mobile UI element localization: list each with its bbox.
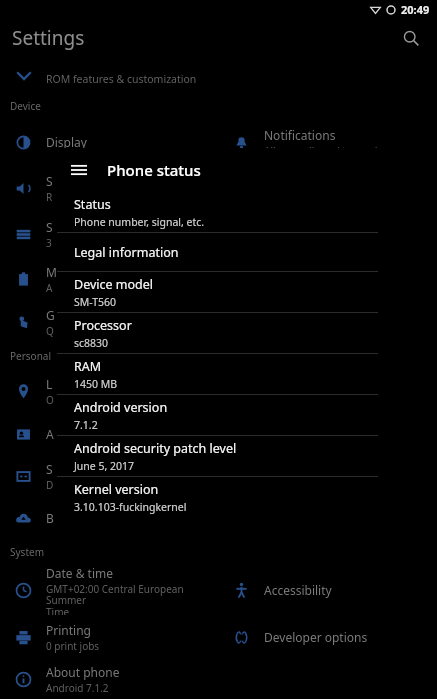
button[interactable]: Processor	[57, 313, 437, 353]
staticText: S	[46, 461, 53, 477]
staticText: 3	[46, 236, 52, 250]
staticText: S	[46, 173, 53, 189]
button[interactable]	[218, 455, 437, 497]
staticText: D	[46, 478, 54, 492]
staticText: B	[46, 510, 54, 526]
staticText: M	[46, 264, 57, 280]
button[interactable]: Status	[57, 192, 437, 232]
button[interactable]: Android version	[57, 395, 437, 435]
staticText: Accessibility	[264, 582, 332, 598]
staticText: Printing	[46, 622, 91, 638]
button[interactable]: M	[0, 257, 218, 301]
staticText: System	[10, 545, 44, 559]
staticText: O	[46, 393, 54, 407]
staticText: SM-T560	[74, 295, 117, 309]
staticText: Personal	[10, 349, 52, 363]
button[interactable]: Notifications	[218, 119, 437, 165]
button[interactable]: Android security patch level	[57, 436, 437, 476]
staticText: Phone status	[107, 160, 201, 180]
staticText: ROM features & customization	[46, 72, 197, 86]
button[interactable]: Search	[395, 22, 427, 54]
staticText: Phone number, signal, etc.	[74, 215, 205, 229]
staticText: Settings	[12, 25, 85, 51]
staticText: About phone	[46, 664, 120, 680]
button[interactable]: Developer options	[218, 615, 437, 659]
staticText: S	[46, 219, 53, 235]
staticText: GMT+02:00 Central European Summer Time	[46, 582, 218, 615]
button[interactable]: S	[0, 212, 218, 257]
staticText: Status	[74, 196, 111, 213]
staticText: Kernel version	[74, 481, 159, 498]
button[interactable]: Kernel version	[57, 477, 437, 517]
staticText: 7.1.2	[74, 418, 98, 432]
staticText: 20:49	[401, 2, 430, 17]
button[interactable]: Open navigation menu	[63, 154, 95, 186]
staticText: L	[46, 376, 53, 392]
button[interactable]: S	[0, 165, 218, 212]
staticText: Legal information	[74, 244, 179, 261]
button[interactable]: About phone	[0, 659, 218, 699]
staticText: Android security patch level	[74, 440, 237, 457]
staticText: Android version	[74, 399, 168, 416]
button[interactable]	[218, 257, 437, 301]
staticText: Device	[10, 99, 41, 113]
button[interactable]: Accessibility	[218, 565, 437, 615]
staticText: sc8830	[74, 336, 109, 350]
staticText: All apps allowed to send	[264, 144, 378, 158]
button[interactable]: Device model	[57, 272, 437, 312]
staticText: Android 7.1.2	[46, 681, 109, 695]
staticText: 0 print jobs	[46, 639, 100, 653]
button[interactable]: Display	[0, 119, 218, 165]
button[interactable]: Legal information	[57, 233, 437, 271]
button[interactable]	[218, 413, 437, 455]
button[interactable]: A	[0, 413, 218, 455]
staticText: A	[46, 426, 54, 442]
staticText: Display	[46, 134, 87, 150]
button[interactable]: S	[0, 455, 218, 497]
button[interactable]: B	[0, 497, 218, 539]
staticText: Q	[46, 324, 54, 338]
staticText: RAM	[74, 358, 102, 375]
staticText: 3.10.103-fuckingkernel	[74, 500, 187, 514]
button[interactable]	[218, 301, 437, 343]
button[interactable]: L	[0, 369, 218, 413]
staticText: Processor	[74, 317, 132, 334]
staticText: Device model	[74, 276, 154, 293]
staticText: Developer options	[264, 629, 368, 645]
staticText: 1450 MB	[74, 377, 118, 391]
staticText: R	[46, 190, 53, 204]
staticText: A	[46, 281, 53, 295]
button[interactable]: G	[0, 301, 218, 343]
staticText: June 5, 2017	[74, 459, 135, 473]
staticText: Date & time	[46, 565, 114, 581]
button[interactable]	[218, 212, 437, 257]
button[interactable]: Date & time	[0, 565, 218, 615]
button[interactable]: ROM features & customization	[0, 57, 437, 93]
button[interactable]	[218, 369, 437, 413]
staticText: Notifications	[264, 127, 336, 143]
button[interactable]: RAM	[57, 354, 437, 394]
button[interactable]: Printing	[0, 615, 218, 659]
staticText: G	[46, 307, 55, 323]
